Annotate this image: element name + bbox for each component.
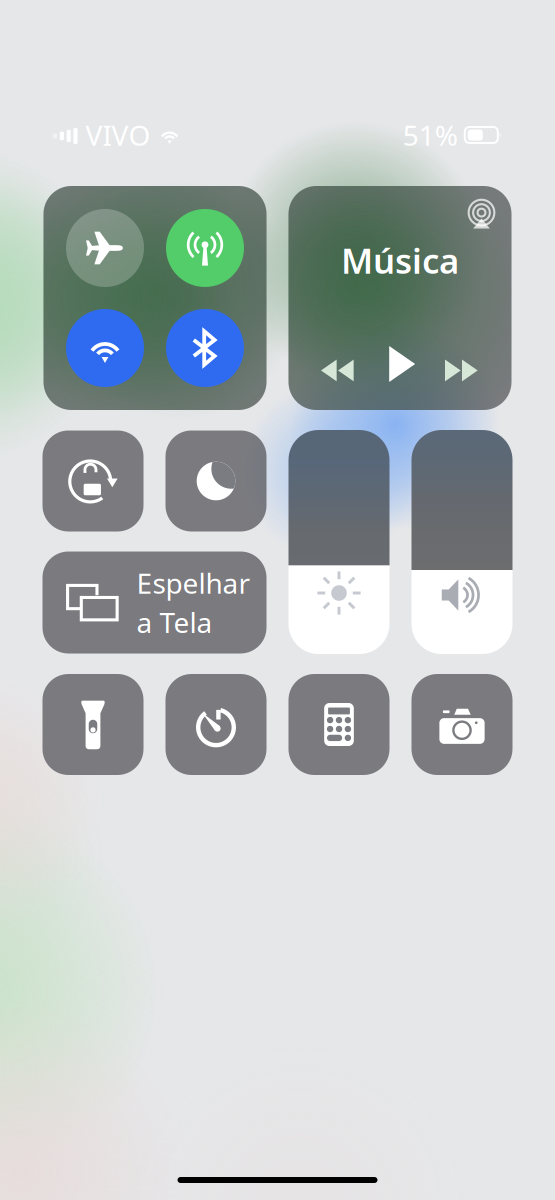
staticText: a Tela bbox=[136, 603, 212, 641]
button[interactable]: Brightness bbox=[288, 430, 389, 654]
button[interactable]: Camera bbox=[411, 674, 512, 775]
button[interactable]: AirPlay bbox=[461, 194, 501, 235]
button[interactable]: Timer bbox=[165, 674, 266, 775]
staticText: VIVO bbox=[86, 116, 151, 154]
button[interactable]: Bluetooth bbox=[166, 309, 244, 387]
button[interactable]: Do Not Disturb bbox=[165, 430, 266, 531]
button[interactable]: Calculator bbox=[288, 674, 389, 775]
staticText: Espelhar bbox=[136, 564, 250, 601]
button[interactable]: Play bbox=[369, 342, 431, 386]
button[interactable]: Espelhar bbox=[42, 551, 266, 653]
button[interactable]: Flashlight bbox=[42, 674, 143, 775]
button[interactable]: Volume bbox=[411, 430, 512, 654]
button[interactable]: Airplane Mode bbox=[66, 209, 144, 287]
button[interactable]: Cellular Data bbox=[166, 209, 244, 287]
button[interactable]: Wi-Fi bbox=[66, 309, 144, 387]
button[interactable]: Next bbox=[431, 342, 493, 386]
button[interactable]: Previous bbox=[307, 342, 369, 386]
staticText: 51% bbox=[403, 116, 458, 154]
button[interactable]: Rotation Lock bbox=[42, 430, 143, 531]
staticText: Música bbox=[341, 237, 459, 283]
